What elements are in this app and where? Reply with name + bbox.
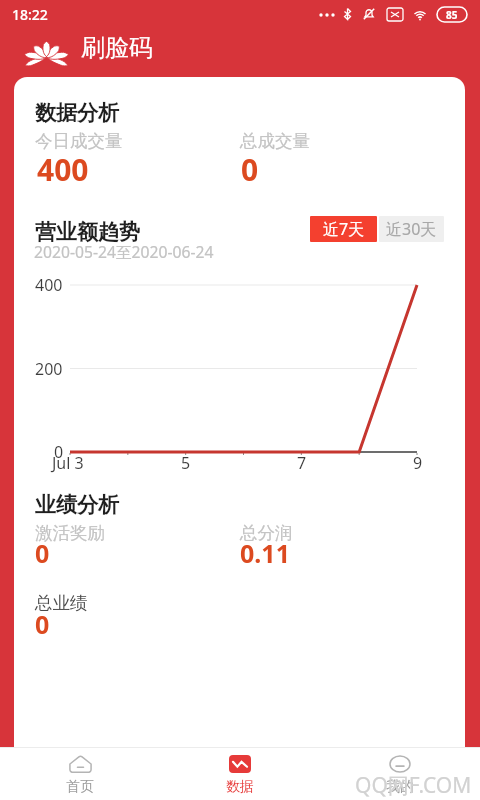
staticText: 9 xyxy=(413,452,423,474)
staticText: 0 xyxy=(35,607,50,641)
staticText: 85 xyxy=(446,8,458,22)
staticText: 近7天 xyxy=(323,218,365,240)
staticText: 我的 xyxy=(386,778,414,796)
staticText: 200 xyxy=(35,358,63,380)
other: Data xyxy=(229,755,251,773)
button[interactable]: 近30天 xyxy=(379,216,444,242)
staticText: 今日成交量 xyxy=(35,130,123,152)
staticText: 激活奖励 xyxy=(35,522,105,544)
staticText: 数据 xyxy=(226,778,254,796)
staticText: 刷脸码 xyxy=(81,33,153,63)
staticText: 400 xyxy=(37,149,89,190)
staticText: 0 xyxy=(241,149,259,190)
staticText: 0 xyxy=(35,536,50,570)
button[interactable]: 近7天 xyxy=(310,216,377,242)
staticText: QQ网F.COM xyxy=(355,771,472,800)
staticText: 总成交量 xyxy=(240,130,310,152)
staticText: 2020-05-24至2020-06-24 xyxy=(34,241,214,262)
staticText: 总分润 xyxy=(240,522,293,544)
staticText: 营业额趋势 xyxy=(35,219,140,245)
staticText: 400 xyxy=(35,274,63,296)
button[interactable]: Data xyxy=(160,748,320,800)
other: Profile xyxy=(389,755,411,773)
staticText: Jul 3 xyxy=(52,452,84,474)
staticText: 7 xyxy=(297,452,307,474)
staticText: 0 xyxy=(54,441,64,463)
staticText: 首页 xyxy=(66,778,94,796)
button[interactable]: Home xyxy=(0,748,160,800)
staticText: 总业绩 xyxy=(35,592,88,614)
staticText: 数据分析 xyxy=(35,100,119,126)
staticText: 近30天 xyxy=(386,218,437,240)
other: Home xyxy=(69,755,92,773)
staticText: 5 xyxy=(181,452,191,474)
staticText: 业绩分析 xyxy=(35,492,119,518)
staticText: 18:22 xyxy=(12,5,48,24)
staticText: 0.11 xyxy=(240,536,290,570)
button[interactable]: Profile xyxy=(320,748,480,800)
